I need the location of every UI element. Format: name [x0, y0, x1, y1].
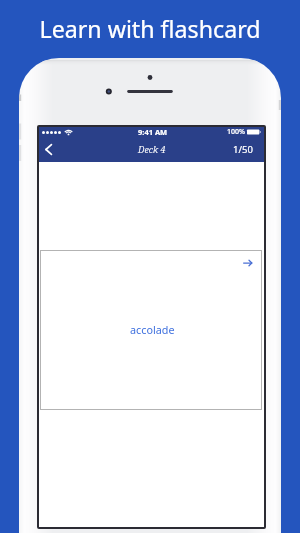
staticText: 1/50: [233, 143, 253, 156]
staticText: 100%: [227, 127, 245, 137]
staticText: Deck 4: [138, 143, 166, 156]
staticText: accolade: [130, 322, 175, 337]
staticText: 9:41 AM: [138, 127, 168, 137]
button[interactable]: Back: [39, 139, 63, 162]
button[interactable]: Next card: [242, 257, 254, 269]
staticText: Learn with flashcard: [0, 13, 300, 45]
button[interactable]: accolade: [40, 250, 262, 410]
